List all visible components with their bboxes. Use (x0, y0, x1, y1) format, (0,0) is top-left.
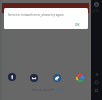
button[interactable]: Sign in with Facebook (8, 73, 16, 81)
button[interactable]: Home (94, 80, 99, 85)
button[interactable]: Have an account? (6, 88, 89, 92)
staticText: 12:30 (92, 9, 99, 13)
button[interactable]: Sign in with email (30, 74, 38, 82)
staticText: Server or network error, please try agai… (8, 13, 64, 17)
button[interactable]: Recents (94, 88, 99, 93)
button[interactable]: Clock (94, 2, 99, 7)
button[interactable]: Back (94, 72, 99, 77)
button[interactable]: OK (71, 22, 83, 28)
staticText: Sign In (55, 88, 64, 92)
button[interactable]: Sign in with Google (76, 74, 84, 82)
button[interactable]: Sign in with Twitter (53, 74, 61, 82)
staticText: OK (75, 23, 80, 27)
staticText: Have an account? (32, 88, 55, 92)
